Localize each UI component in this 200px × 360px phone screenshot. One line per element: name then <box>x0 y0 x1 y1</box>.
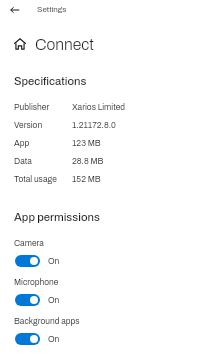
staticText: Camera <box>14 239 44 248</box>
staticText: Microphone <box>14 278 59 287</box>
staticText: On <box>48 296 60 305</box>
staticText: 152 MB <box>72 175 101 184</box>
button[interactable]: Settings <box>33 3 63 18</box>
staticText: Data <box>14 157 72 166</box>
staticText: Total usage <box>14 175 72 184</box>
staticText: Version <box>14 121 72 130</box>
staticText: Specifications <box>14 75 87 87</box>
staticText: Publisher <box>14 103 72 112</box>
button[interactable]: On <box>14 292 60 308</box>
staticText: Xarios Limited <box>72 103 125 112</box>
staticText: On <box>48 257 60 266</box>
button[interactable]: On <box>14 253 60 269</box>
staticText: App <box>14 139 72 148</box>
staticText: On <box>48 335 60 344</box>
staticText: App permissions <box>14 211 100 223</box>
button[interactable]: On <box>14 331 60 347</box>
staticText: 28.8 MB <box>72 157 104 166</box>
staticText: Connect <box>35 36 94 53</box>
staticText: 123 MB <box>72 139 101 148</box>
staticText: Settings <box>37 5 67 14</box>
staticText: 1.21172.8.0 <box>72 121 116 130</box>
staticText: Background apps <box>14 317 80 326</box>
button[interactable]: Back <box>4 0 26 21</box>
